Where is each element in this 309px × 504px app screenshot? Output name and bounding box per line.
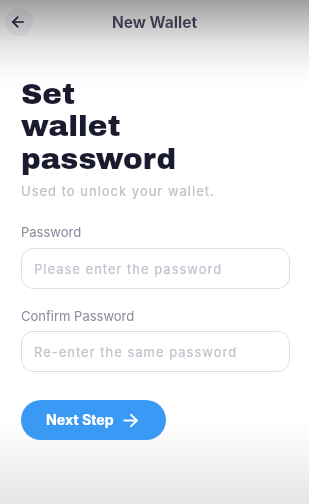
button[interactable]: Please enter the password <box>21 248 290 289</box>
staticText: Set wallet password <box>21 78 177 176</box>
staticText: Re-enter the same password <box>34 344 238 360</box>
button[interactable]: Re-enter the same password <box>21 331 290 372</box>
staticText: Please enter the password <box>34 261 223 277</box>
button[interactable]: Back <box>5 8 33 36</box>
staticText: Next Step <box>46 411 114 428</box>
staticText: Used to unlock your wallet. <box>21 183 215 199</box>
staticText: Password <box>21 224 82 240</box>
staticText: New Wallet <box>0 13 309 504</box>
button[interactable]: Next Step <box>21 400 166 440</box>
staticText: Confirm Password <box>21 308 135 324</box>
